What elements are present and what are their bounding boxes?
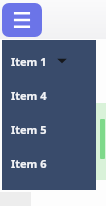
staticText: Item 1 bbox=[11, 54, 47, 69]
button[interactable]: Open navigation menu bbox=[2, 3, 42, 37]
button[interactable]: Item 5 bbox=[2, 112, 96, 146]
button[interactable]: Item 4 bbox=[2, 78, 96, 112]
staticText: Item 6 bbox=[11, 156, 47, 171]
button[interactable]: Item 6 bbox=[2, 146, 96, 180]
staticText: Item 4 bbox=[11, 88, 47, 103]
button[interactable]: Item 1 bbox=[2, 44, 96, 78]
staticText: Item 5 bbox=[11, 122, 47, 137]
